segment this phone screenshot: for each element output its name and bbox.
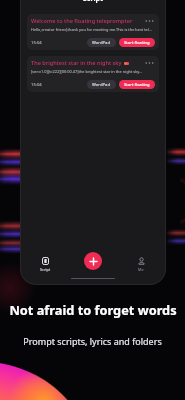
staticText: Prompt scripts, lyrics and folders [23, 335, 162, 347]
button[interactable]: The brightest star in the night sky [27, 56, 159, 92]
button[interactable]: More options [144, 59, 155, 67]
button[interactable]: Script [21, 252, 69, 276]
staticText: WordPad [92, 40, 111, 46]
staticText: The brightest star in the night sky [31, 59, 122, 67]
staticText: Hello,creator friend,thank you for meeti… [31, 27, 152, 32]
staticText: 15:04 [31, 82, 42, 88]
button[interactable]: WordPad [87, 80, 116, 89]
button[interactable]: Me [117, 252, 165, 276]
staticText: Start floating [124, 82, 150, 88]
button[interactable]: More options [144, 17, 155, 25]
staticText: Not afraid to forget words [9, 301, 177, 318]
staticText: WordPad [92, 82, 111, 88]
staticText: Me [138, 267, 144, 272]
button[interactable]: Start floating [119, 38, 155, 47]
staticText: Script [21, 0, 165, 4]
button[interactable]: Add script [84, 252, 102, 270]
staticText: Welcome to the floating teleprompter [31, 17, 133, 25]
button[interactable]: Start floating [119, 80, 155, 89]
staticText: Script [40, 267, 51, 272]
staticText: [ver:v1.0][ti:222][00:00.47]the brightes… [31, 69, 143, 74]
button[interactable]: Welcome to the floating teleprompter [27, 14, 159, 50]
button[interactable]: WordPad [87, 38, 116, 47]
staticText: Start floating [124, 40, 150, 46]
staticText: 15:04 [31, 40, 42, 46]
